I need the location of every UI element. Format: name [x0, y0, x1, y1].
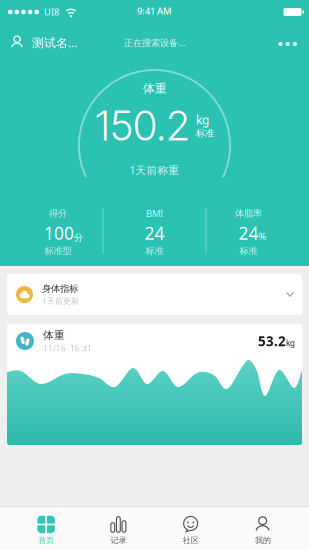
button[interactable]: 测试名… [10, 34, 77, 50]
staticText: BMI [146, 207, 163, 220]
staticText: 1天前更新 [42, 295, 79, 306]
staticText: 测试名… [32, 34, 77, 50]
staticText: 24% [238, 221, 266, 244]
staticText: 9:41 AM [137, 5, 172, 17]
staticText: 标准 [239, 245, 257, 257]
staticText: 11/16 16:31 [43, 343, 92, 353]
staticText: 1天前称重 [129, 163, 179, 177]
staticText: 标准 [145, 245, 163, 257]
staticText: 记录 [110, 535, 126, 545]
staticText: 得分 [49, 208, 67, 219]
staticText: kg [196, 112, 209, 128]
staticText: 标准型 [44, 245, 71, 257]
button[interactable]: 身体指标 [7, 274, 302, 315]
staticText: 体重 [143, 81, 167, 96]
staticText: 身体指标 [42, 283, 78, 294]
staticText: 社区 [183, 535, 199, 545]
staticText: 24 [144, 221, 164, 244]
staticText: 首页 [38, 535, 54, 545]
staticText: 我的 [255, 535, 271, 545]
staticText: 标准 [196, 128, 214, 139]
button[interactable]: 首页 [10, 511, 82, 545]
button[interactable]: 体重 [7, 324, 302, 445]
staticText: 正在搜索设备… [124, 36, 185, 49]
staticText: 体脂率 [235, 208, 262, 219]
button[interactable]: More [278, 39, 297, 46]
staticText: 体重 [43, 329, 65, 342]
staticText: 53.2kg [258, 332, 295, 350]
staticText: UI8 [44, 6, 59, 18]
button[interactable]: 我的 [227, 511, 299, 545]
staticText: 100分 [44, 221, 83, 244]
button[interactable]: 记录 [82, 511, 154, 545]
button[interactable]: 社区 [154, 511, 227, 545]
staticText: 150.2 [95, 100, 190, 150]
